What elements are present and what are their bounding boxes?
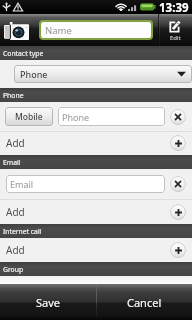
button[interactable]: Save [0,284,96,320]
button[interactable]: Remove field [170,109,186,125]
staticText: Save [36,295,61,310]
button[interactable]: Cancel [96,284,192,320]
staticText: Cancel [127,295,162,310]
button[interactable]: Add contact photo [0,14,39,46]
staticText: Name [45,24,72,37]
button[interactable]: Mobile [5,107,53,126]
staticText: Internet call [3,227,42,236]
button[interactable]: Add [0,199,192,224]
staticText: Phone [20,68,48,80]
button[interactable]: Add [0,238,192,262]
staticText: Add [6,136,25,150]
button[interactable]: Remove field [170,176,186,192]
staticText: Mobile [15,111,43,123]
button[interactable]: Add [0,131,192,155]
staticText: Group [3,265,24,274]
staticText: Email [3,158,21,167]
button[interactable]: Name [41,22,151,38]
staticText: Edit [170,34,181,42]
staticText: 13:39 [159,0,189,14]
staticText: Phone [3,91,24,100]
staticText: Phone [62,111,90,123]
staticText: Contact type [3,49,44,58]
button[interactable]: Edit [160,14,189,46]
staticText: Email [10,178,34,190]
button[interactable]: Email [6,175,165,193]
staticText: Add [6,205,25,219]
button[interactable]: Phone [14,65,192,83]
button[interactable]: Phone [58,107,165,126]
staticText: Add [6,243,25,257]
